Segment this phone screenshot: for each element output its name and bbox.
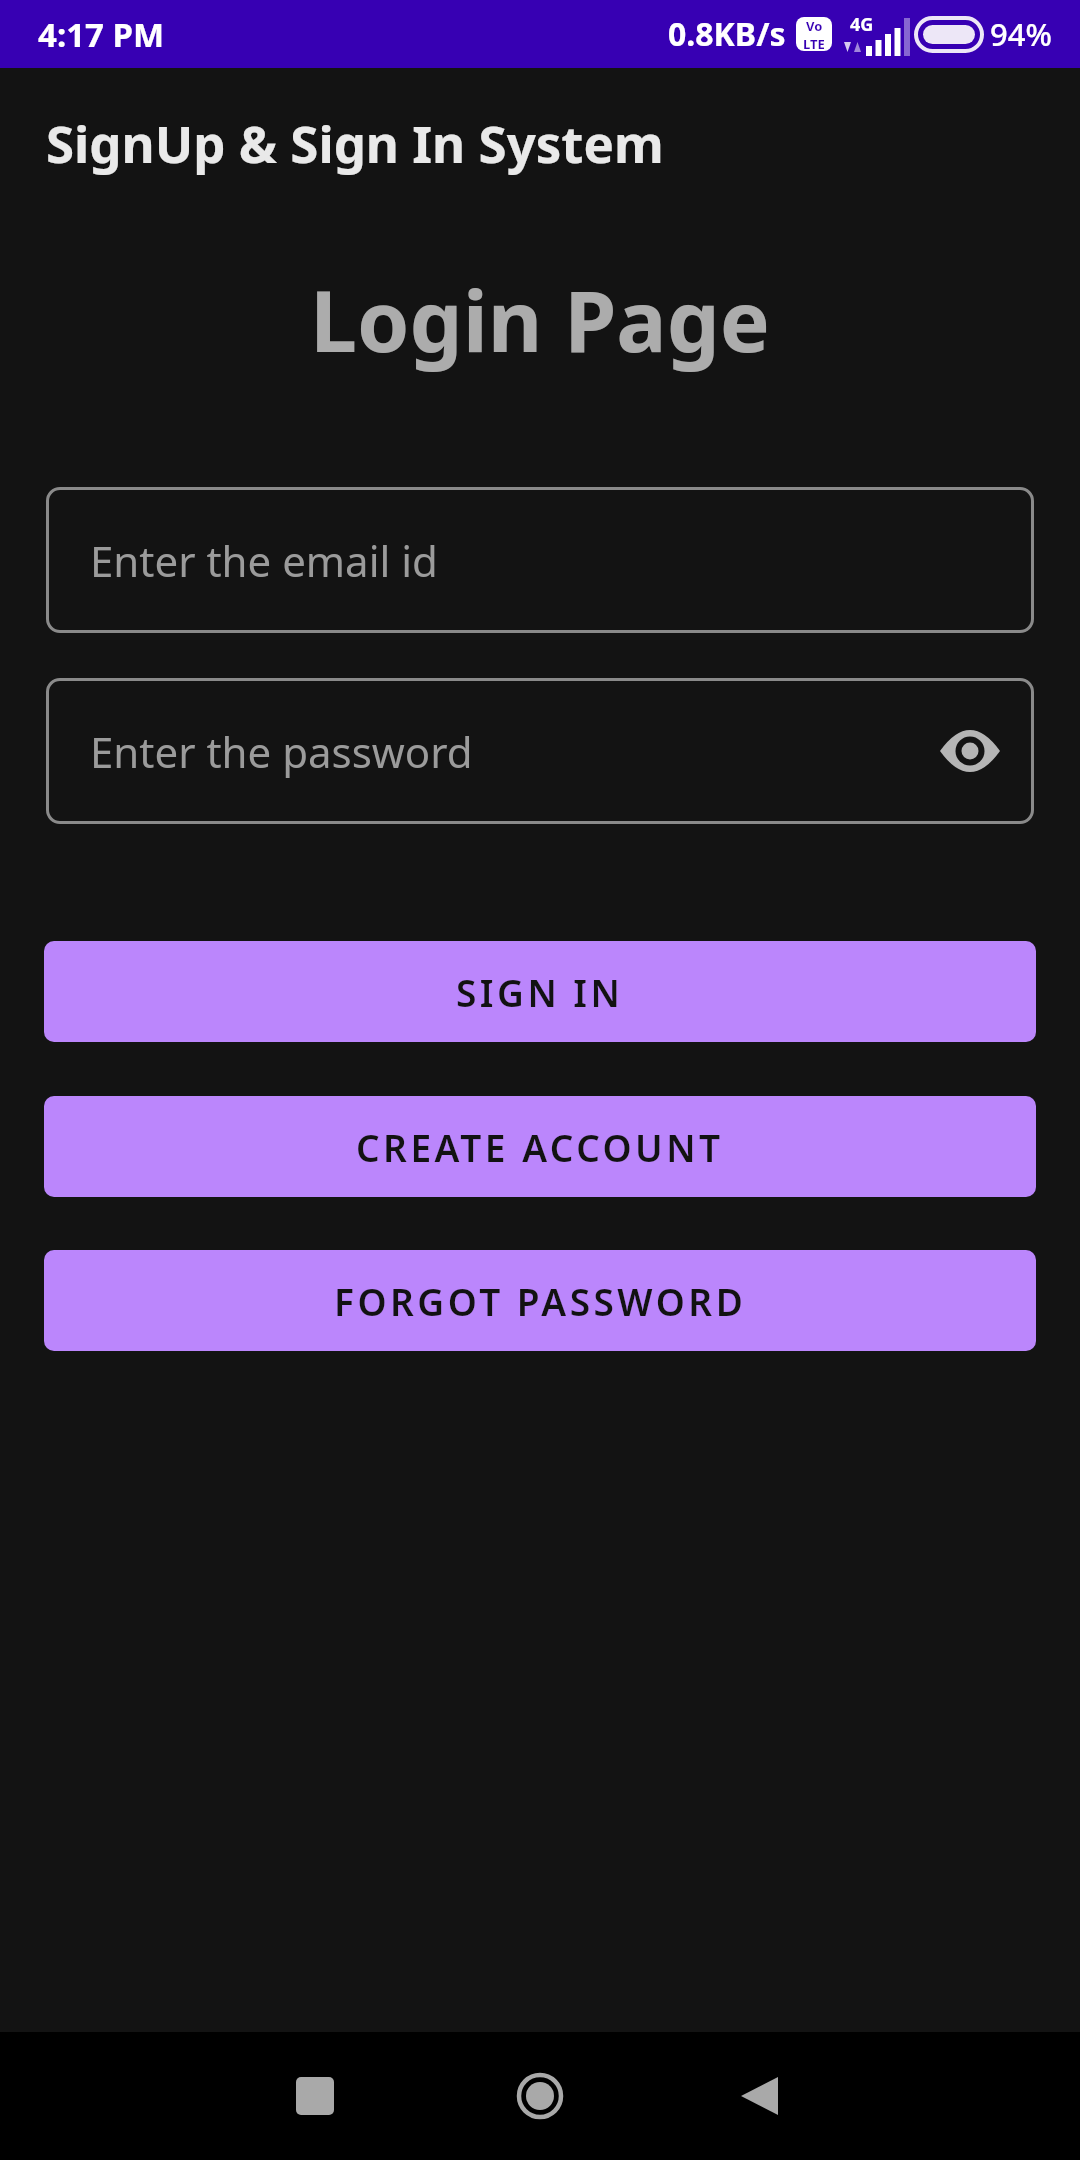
button[interactable]: Enter the email id: [46, 487, 1034, 633]
staticText: CREATE ACCOUNT: [356, 1122, 724, 1172]
button[interactable]: [516, 2072, 564, 2120]
button[interactable]: Enter the password: [46, 678, 1034, 824]
staticText: Enter the email id: [90, 532, 438, 589]
staticText: Enter the password: [90, 723, 473, 780]
staticText: Login Page: [0, 262, 1080, 376]
button[interactable]: SIGN IN: [44, 941, 1036, 1042]
button[interactable]: CREATE ACCOUNT: [44, 1096, 1036, 1197]
staticText: 94%: [990, 13, 1052, 55]
staticText: 0.8KB/s: [668, 12, 786, 56]
staticText: SignUp & Sign In System: [46, 108, 664, 177]
staticText: 4:17 PM: [38, 12, 165, 57]
button[interactable]: [740, 2076, 780, 2116]
button[interactable]: [296, 2077, 334, 2115]
staticText: LTE: [803, 35, 825, 51]
button[interactable]: FORGOT PASSWORD: [44, 1250, 1036, 1351]
staticText: FORGOT PASSWORD: [334, 1276, 747, 1326]
staticText: SIGN IN: [456, 967, 624, 1017]
staticText: 4G: [850, 12, 874, 37]
staticText: Vo: [806, 17, 823, 35]
